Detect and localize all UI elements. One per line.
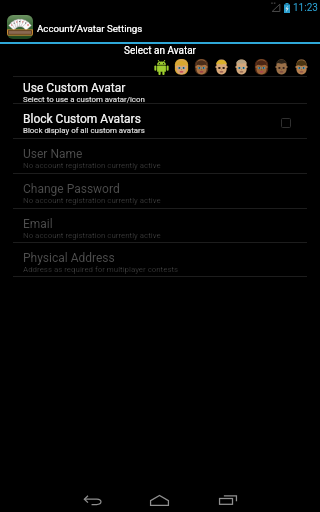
button[interactable]: Avatar 7 — [271, 57, 291, 76]
staticText: No account registration currently active — [23, 161, 161, 170]
button[interactable]: Home — [135, 488, 183, 512]
button[interactable]: Avatar 4 — [211, 57, 231, 76]
button[interactable]: Avatar 8 — [291, 57, 311, 76]
staticText: Address as required for multiplayer cont… — [23, 265, 179, 274]
button[interactable]: Change Password — [0, 174, 320, 208]
button[interactable]: Back — [69, 488, 117, 512]
button[interactable]: Avatar 1 — [151, 57, 171, 76]
staticText: Select to use a custom avatar/icon — [23, 95, 145, 103]
button[interactable]: Recent apps — [204, 488, 252, 512]
staticText: Physical Address — [23, 251, 115, 265]
staticText: User Name — [23, 147, 83, 161]
staticText: Block display of all custom avatars — [23, 126, 145, 135]
button[interactable]: Avatar 3 — [191, 57, 211, 76]
staticText: Block Custom Avatars — [23, 112, 141, 126]
button[interactable]: User Name — [0, 139, 320, 173]
button[interactable]: Physical Address — [0, 243, 320, 276]
staticText: No account registration currently active — [23, 196, 161, 205]
staticText: Select an Avatar — [124, 45, 196, 57]
staticText: No account registration currently active — [23, 231, 161, 240]
staticText: Use Custom Avatar — [23, 81, 126, 95]
button[interactable]: Avatar 6 — [251, 57, 271, 76]
staticText: Email — [23, 217, 53, 231]
button[interactable]: Account/Avatar Settings — [0, 18, 320, 42]
staticText: Account/Avatar Settings — [37, 23, 143, 34]
button[interactable]: Block Custom Avatars — [0, 104, 320, 138]
staticText: 11:23 — [293, 2, 318, 14]
button[interactable]: Avatar 5 — [231, 57, 251, 76]
button[interactable]: Avatar 2 — [171, 57, 191, 76]
button[interactable]: Block Custom Avatars checkbox — [281, 118, 291, 128]
button[interactable]: Use Custom Avatar — [0, 77, 320, 103]
button[interactable]: Email — [0, 209, 320, 242]
staticText: Change Password — [23, 182, 120, 196]
